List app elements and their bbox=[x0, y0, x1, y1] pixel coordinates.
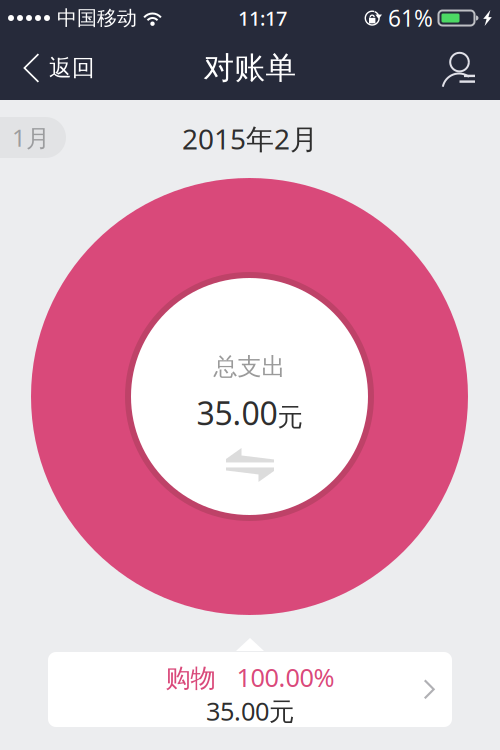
staticText: 购物 100.00% bbox=[165, 660, 334, 694]
staticText: 1月 bbox=[12, 122, 50, 153]
staticText: 总支出 bbox=[213, 352, 285, 381]
staticText: 元 bbox=[277, 402, 302, 433]
staticText: 对账单 bbox=[203, 49, 296, 87]
button[interactable]: 返回 bbox=[0, 36, 111, 100]
staticText: 35.00元 bbox=[206, 694, 294, 728]
staticText: 中国移动 bbox=[57, 6, 137, 30]
button[interactable]: Account bbox=[427, 36, 500, 100]
staticText: 35.00 bbox=[196, 391, 277, 434]
staticText: 61% bbox=[388, 3, 433, 33]
button[interactable]: 购物 100.00% bbox=[48, 652, 452, 727]
button[interactable]: 1月 bbox=[0, 117, 66, 158]
staticText: 11:17 bbox=[238, 5, 287, 31]
staticText: 返回 bbox=[49, 54, 95, 82]
staticText: 2015年2月 bbox=[182, 120, 318, 157]
